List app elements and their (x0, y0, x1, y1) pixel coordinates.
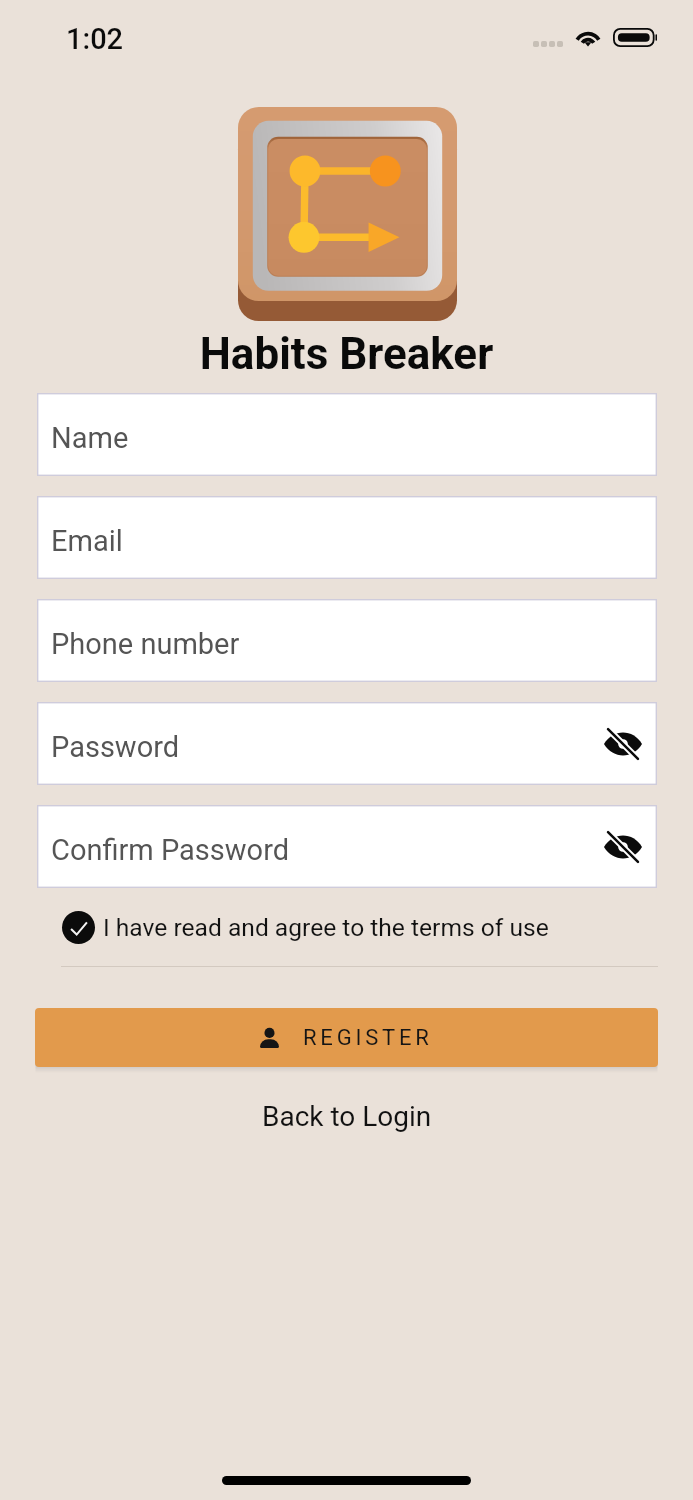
staticText: REGISTER (303, 1025, 433, 1051)
staticText: Confirm Password (51, 833, 290, 867)
other: Wi-Fi (574, 28, 602, 47)
button[interactable]: Email (37, 496, 657, 579)
button[interactable]: Phone number (37, 599, 657, 682)
button[interactable]: Name (37, 393, 657, 476)
staticText: 1:02 (66, 22, 124, 56)
staticText: Email (51, 524, 123, 558)
button[interactable]: Back to Login (240, 1092, 453, 1140)
button[interactable]: Show password (596, 820, 650, 874)
staticText: Habits Breaker (0, 328, 693, 1500)
button[interactable]: Confirm Password (37, 805, 657, 888)
staticText: Back to Login (262, 1100, 432, 1133)
button[interactable]: REGISTER (35, 1008, 658, 1067)
button[interactable]: I have read and agree to the terms of us… (62, 906, 549, 948)
staticText: Phone number (51, 627, 240, 661)
staticText: Name (51, 421, 129, 455)
staticText: Password (51, 730, 180, 764)
button[interactable]: Password (37, 702, 657, 785)
staticText: I have read and agree to the terms of us… (103, 913, 549, 942)
button[interactable]: Show password (596, 717, 650, 771)
other: Battery (613, 28, 657, 47)
